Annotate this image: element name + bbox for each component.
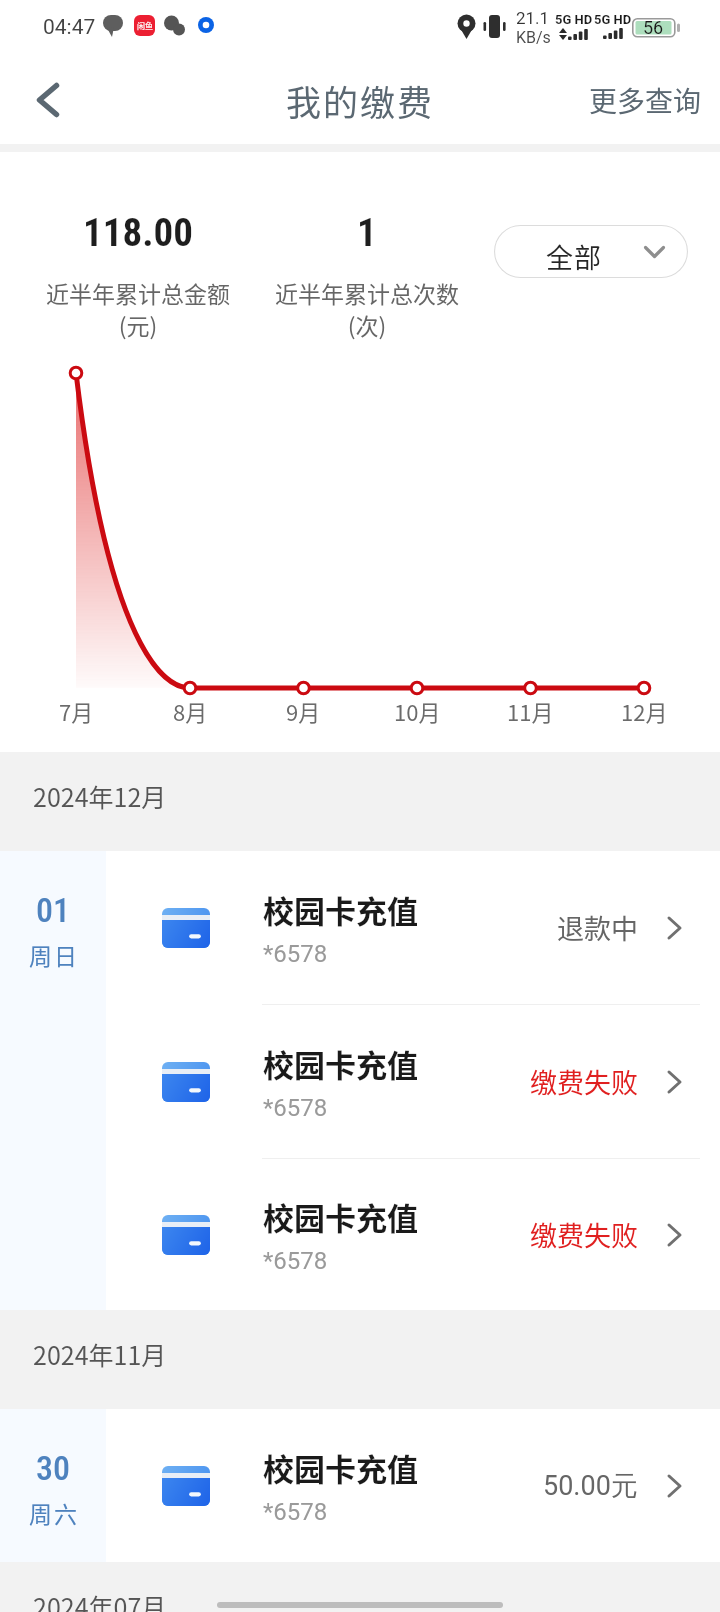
staticText: 闲鱼	[137, 20, 153, 32]
button[interactable]: 校园卡充值	[106, 1005, 720, 1158]
button[interactable]: 校园卡充值	[106, 1158, 720, 1311]
staticText: 12月	[621, 695, 668, 727]
staticText: KB/s	[516, 28, 551, 47]
staticText: 1	[357, 210, 377, 256]
button[interactable]: 更多查询	[573, 56, 720, 144]
button[interactable]: Back	[0, 56, 96, 144]
staticText: *6578	[263, 1094, 328, 1122]
staticText: 退款中	[557, 908, 638, 947]
staticText: 11月	[507, 695, 554, 727]
staticText: 21.1	[516, 8, 550, 28]
staticText: 7月	[59, 695, 94, 727]
staticText: 56	[643, 17, 664, 37]
staticText: 2024年11月	[33, 1336, 167, 1372]
staticText: 01	[36, 890, 70, 930]
staticText: 缴费失败	[530, 1215, 638, 1254]
staticText: 更多查询	[589, 80, 702, 121]
staticText: 5G HD	[594, 12, 632, 27]
staticText: 周六	[28, 1496, 78, 1529]
staticText: 近半年累计总金额 (元)	[46, 276, 230, 342]
staticText: 校园卡充值	[263, 1445, 418, 1490]
staticText: 50.00元	[543, 1469, 638, 1503]
staticText: 校园卡充值	[263, 887, 418, 932]
button[interactable]: 全部	[494, 225, 688, 278]
staticText: 2024年12月	[33, 778, 167, 814]
staticText: *6578	[263, 1498, 328, 1526]
staticText: 10月	[394, 695, 441, 727]
staticText: *6578	[263, 940, 328, 968]
staticText: 9月	[286, 695, 321, 727]
staticText: 2024年07月	[33, 1588, 167, 1612]
staticText: 周日	[28, 938, 78, 971]
staticText: 5G HD	[555, 12, 593, 27]
button[interactable]: 校园卡充值	[106, 851, 720, 1004]
staticText: 校园卡充值	[263, 1194, 418, 1239]
staticText: *6578	[263, 1247, 328, 1275]
staticText: 缴费失败	[530, 1062, 638, 1101]
staticText: 8月	[173, 695, 208, 727]
button[interactable]: 校园卡充值	[106, 1409, 720, 1562]
staticText: 校园卡充值	[263, 1041, 418, 1086]
staticText: 30	[36, 1448, 70, 1488]
staticText: 04:47	[43, 15, 96, 40]
staticText: 118.00	[83, 210, 193, 256]
staticText: 我的缴费	[286, 75, 435, 126]
staticText: 全部	[546, 237, 602, 276]
staticText: 近半年累计总次数 (次)	[275, 276, 459, 342]
